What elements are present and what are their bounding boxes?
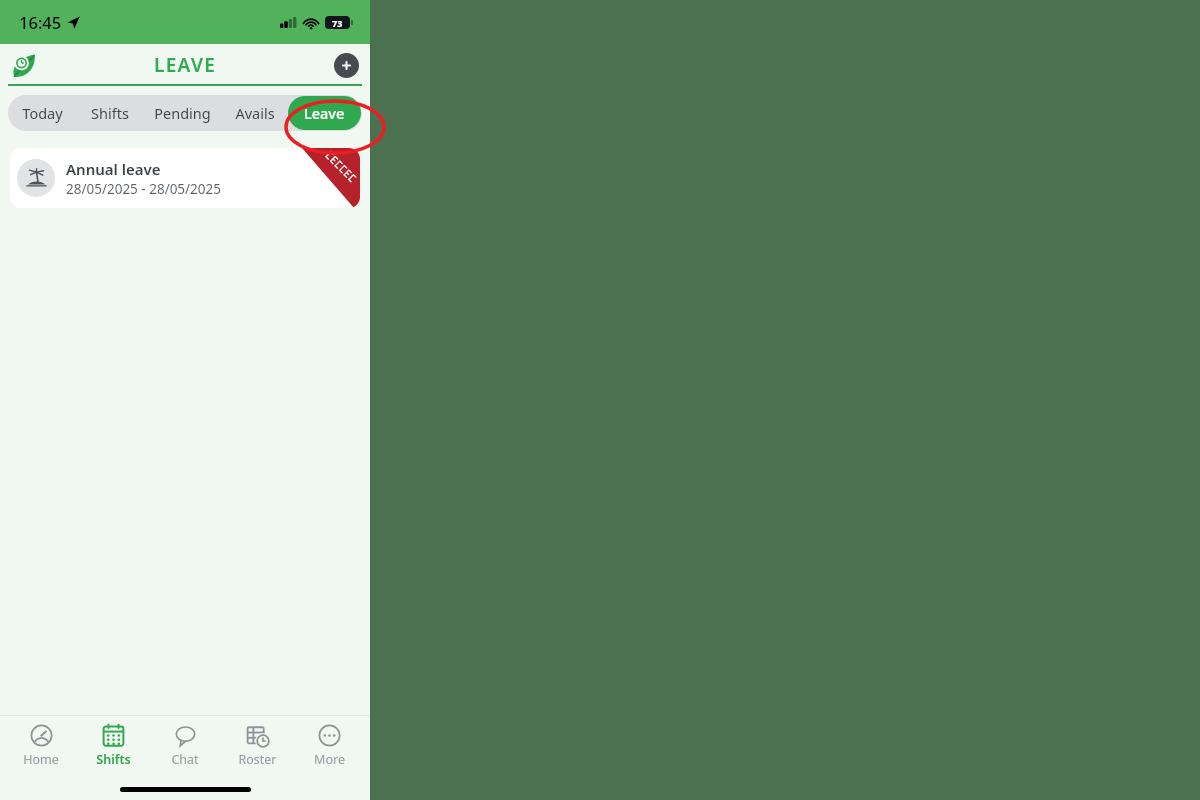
staticText: Pending — [154, 103, 211, 123]
staticText: Annual leave — [66, 159, 161, 179]
staticText: Avails — [235, 103, 275, 123]
button[interactable]: Chat — [154, 722, 216, 770]
staticText: Today — [22, 103, 63, 123]
button[interactable]: Annual leave — [10, 148, 360, 208]
button[interactable]: Add leave request — [334, 53, 359, 78]
button[interactable]: Leave — [288, 96, 361, 130]
button[interactable]: Open menu — [8, 50, 38, 80]
button[interactable]: Shifts — [82, 722, 144, 770]
staticText: Chat — [171, 751, 199, 768]
staticText: 28/05/2025 - 28/05/2025 — [66, 180, 222, 198]
staticText: LEAVE — [154, 52, 217, 78]
button[interactable]: Avails — [222, 95, 287, 131]
staticText: Home — [23, 751, 59, 768]
button[interactable]: More — [298, 722, 360, 770]
button[interactable]: Shifts — [76, 95, 143, 131]
button[interactable]: Roster — [226, 722, 288, 770]
staticText: 16:45 — [19, 11, 62, 33]
staticText: More — [314, 751, 345, 768]
staticText: Shifts — [96, 751, 131, 768]
staticText: 73 — [332, 17, 343, 29]
staticText: Roster — [238, 751, 277, 768]
staticText: Leave — [304, 103, 345, 123]
button[interactable]: Pending — [143, 95, 222, 131]
button[interactable]: Home — [10, 722, 72, 770]
staticText: Shifts — [91, 103, 129, 123]
button[interactable]: Today — [8, 95, 76, 131]
